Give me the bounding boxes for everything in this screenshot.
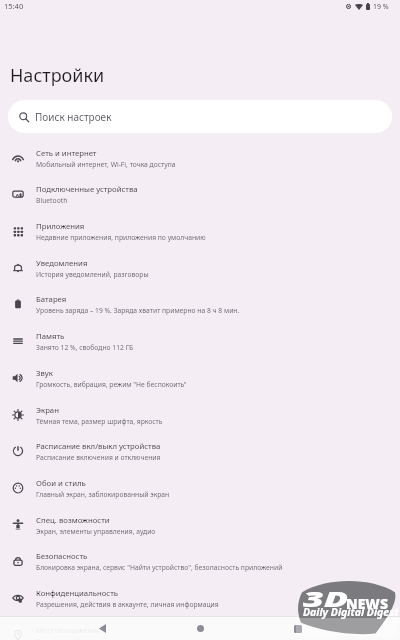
staticText: Обои и стиль bbox=[36, 478, 86, 489]
staticText: Подключенные устройства bbox=[36, 184, 138, 195]
staticText: Спец. возможности bbox=[36, 515, 110, 526]
staticText: 15:40 bbox=[4, 1, 24, 11]
staticText: Громкость, вибрация, режим "Не беспокоит… bbox=[36, 380, 187, 389]
button[interactable]: Звук bbox=[0, 360, 400, 397]
staticText: 3D bbox=[303, 585, 349, 614]
button[interactable]: Обои и стиль bbox=[0, 470, 400, 507]
button[interactable]: Поиск настроек bbox=[8, 100, 392, 133]
staticText: Приложения bbox=[36, 221, 85, 232]
staticText: История уведомлений, разговоры bbox=[36, 270, 149, 279]
staticText: Безопасность bbox=[36, 551, 88, 562]
staticText: Недавние приложения, приложения по умолч… bbox=[36, 233, 206, 242]
staticText: Поиск настроек bbox=[35, 110, 112, 124]
button[interactable]: Сеть и интернет bbox=[0, 140, 400, 177]
staticText: Разрешения, действия в аккаунте, личная … bbox=[36, 600, 219, 609]
button[interactable]: Назад bbox=[84, 617, 120, 640]
staticText: Конфиденциальность bbox=[36, 588, 118, 599]
staticText: Расписание вкл/выкл устройства bbox=[36, 441, 161, 452]
button[interactable]: Подключенные устройства bbox=[0, 176, 400, 213]
button[interactable]: Приложения bbox=[0, 213, 400, 250]
staticText: Занято 12 %, свободно 112 ГБ bbox=[36, 343, 134, 352]
staticText: Bluetooth bbox=[36, 196, 68, 205]
button[interactable]: Конфиденциальность bbox=[0, 580, 400, 617]
button[interactable]: Память bbox=[0, 323, 400, 360]
button[interactable]: Уведомления bbox=[0, 250, 400, 287]
staticText: Расписание включения и отключения bbox=[36, 453, 161, 462]
button[interactable]: Экран bbox=[0, 397, 400, 434]
staticText: Экран bbox=[36, 405, 59, 416]
button[interactable]: Обзор bbox=[280, 617, 316, 640]
staticText: Daily Digital Digest bbox=[303, 605, 399, 619]
staticText: Тёмная тема, размер шрифта, яркость bbox=[36, 417, 163, 426]
staticText: Память bbox=[36, 331, 65, 342]
staticText: NEWS bbox=[346, 594, 388, 613]
button[interactable]: Батарея bbox=[0, 286, 400, 323]
staticText: Местоположение bbox=[36, 625, 102, 636]
button[interactable]: Спец. возможности bbox=[0, 507, 400, 544]
button[interactable]: Главный экран bbox=[182, 617, 218, 640]
button[interactable]: Расписание вкл/выкл устройства bbox=[0, 433, 400, 470]
staticText: Уровень заряда – 19 %. Заряда хватит при… bbox=[36, 306, 240, 315]
staticText: 19 % bbox=[373, 2, 389, 12]
staticText: Батарея bbox=[36, 294, 67, 305]
staticText: Главный экран, заблокированный экран bbox=[36, 490, 170, 499]
staticText: Мобильный интернет, Wi-Fi, точка доступа bbox=[36, 160, 176, 169]
staticText: Уведомления bbox=[36, 258, 88, 269]
button[interactable]: Безопасность bbox=[0, 543, 400, 580]
staticText: Экран, элементы управления, аудио bbox=[36, 527, 156, 536]
staticText: Сеть и интернет bbox=[36, 148, 97, 159]
staticText: Блокировка экрана, сервис "Найти устройс… bbox=[36, 563, 283, 572]
staticText: Настройки bbox=[10, 63, 105, 88]
button[interactable]: Местоположение bbox=[0, 617, 400, 640]
staticText: Звук bbox=[36, 368, 53, 379]
